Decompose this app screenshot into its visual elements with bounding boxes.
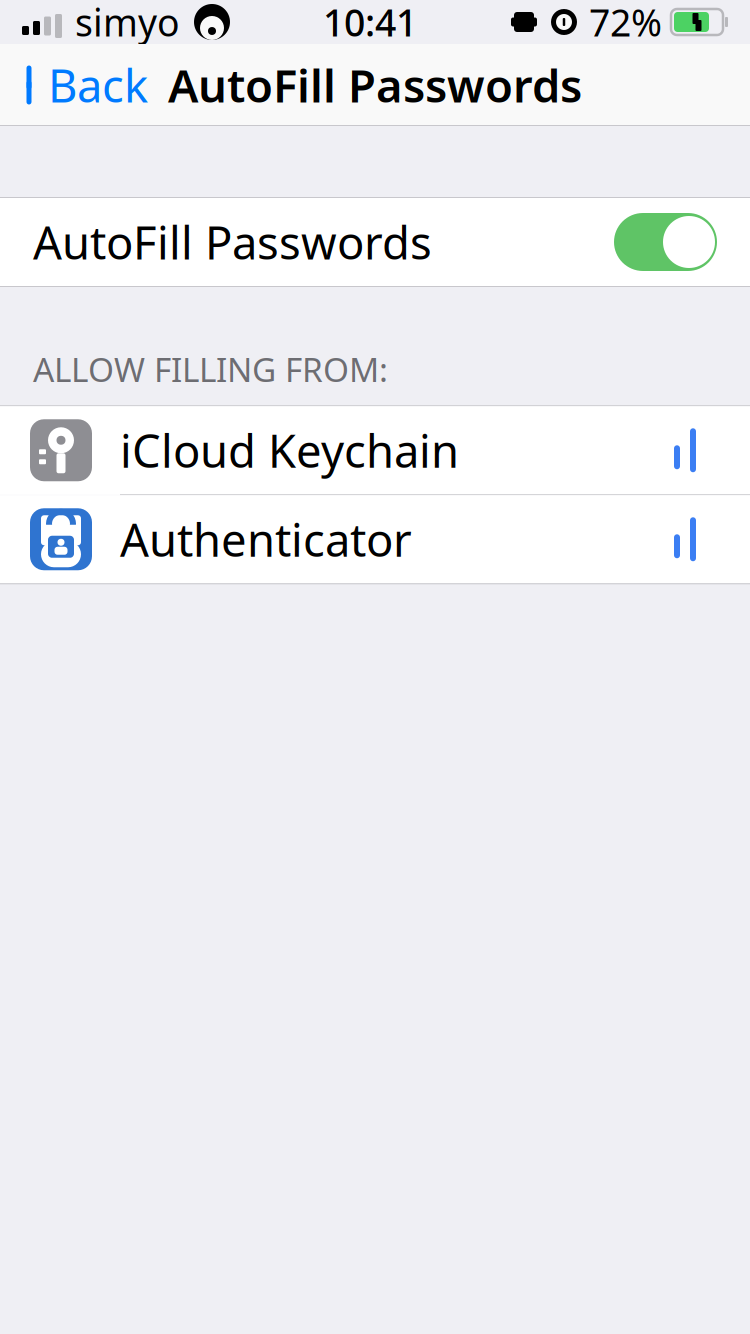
staticText: 72% xyxy=(589,0,662,47)
staticText: 10:41 xyxy=(323,0,417,47)
staticText: Back xyxy=(48,55,148,115)
button[interactable]: AutoFill Passwords xyxy=(0,198,750,286)
button[interactable]: Authenticator xyxy=(0,495,750,583)
button[interactable]: iCloud Keychain xyxy=(0,406,750,494)
staticText: AutoFill Passwords xyxy=(33,212,432,272)
staticText: AutoFill Passwords xyxy=(168,55,582,115)
button[interactable]: Back xyxy=(0,44,166,126)
staticText: simyo xyxy=(75,0,180,47)
staticText: ALLOW FILLING FROM: xyxy=(33,347,388,391)
staticText: Authenticator xyxy=(120,509,412,569)
staticText: iCloud Keychain xyxy=(120,420,459,480)
